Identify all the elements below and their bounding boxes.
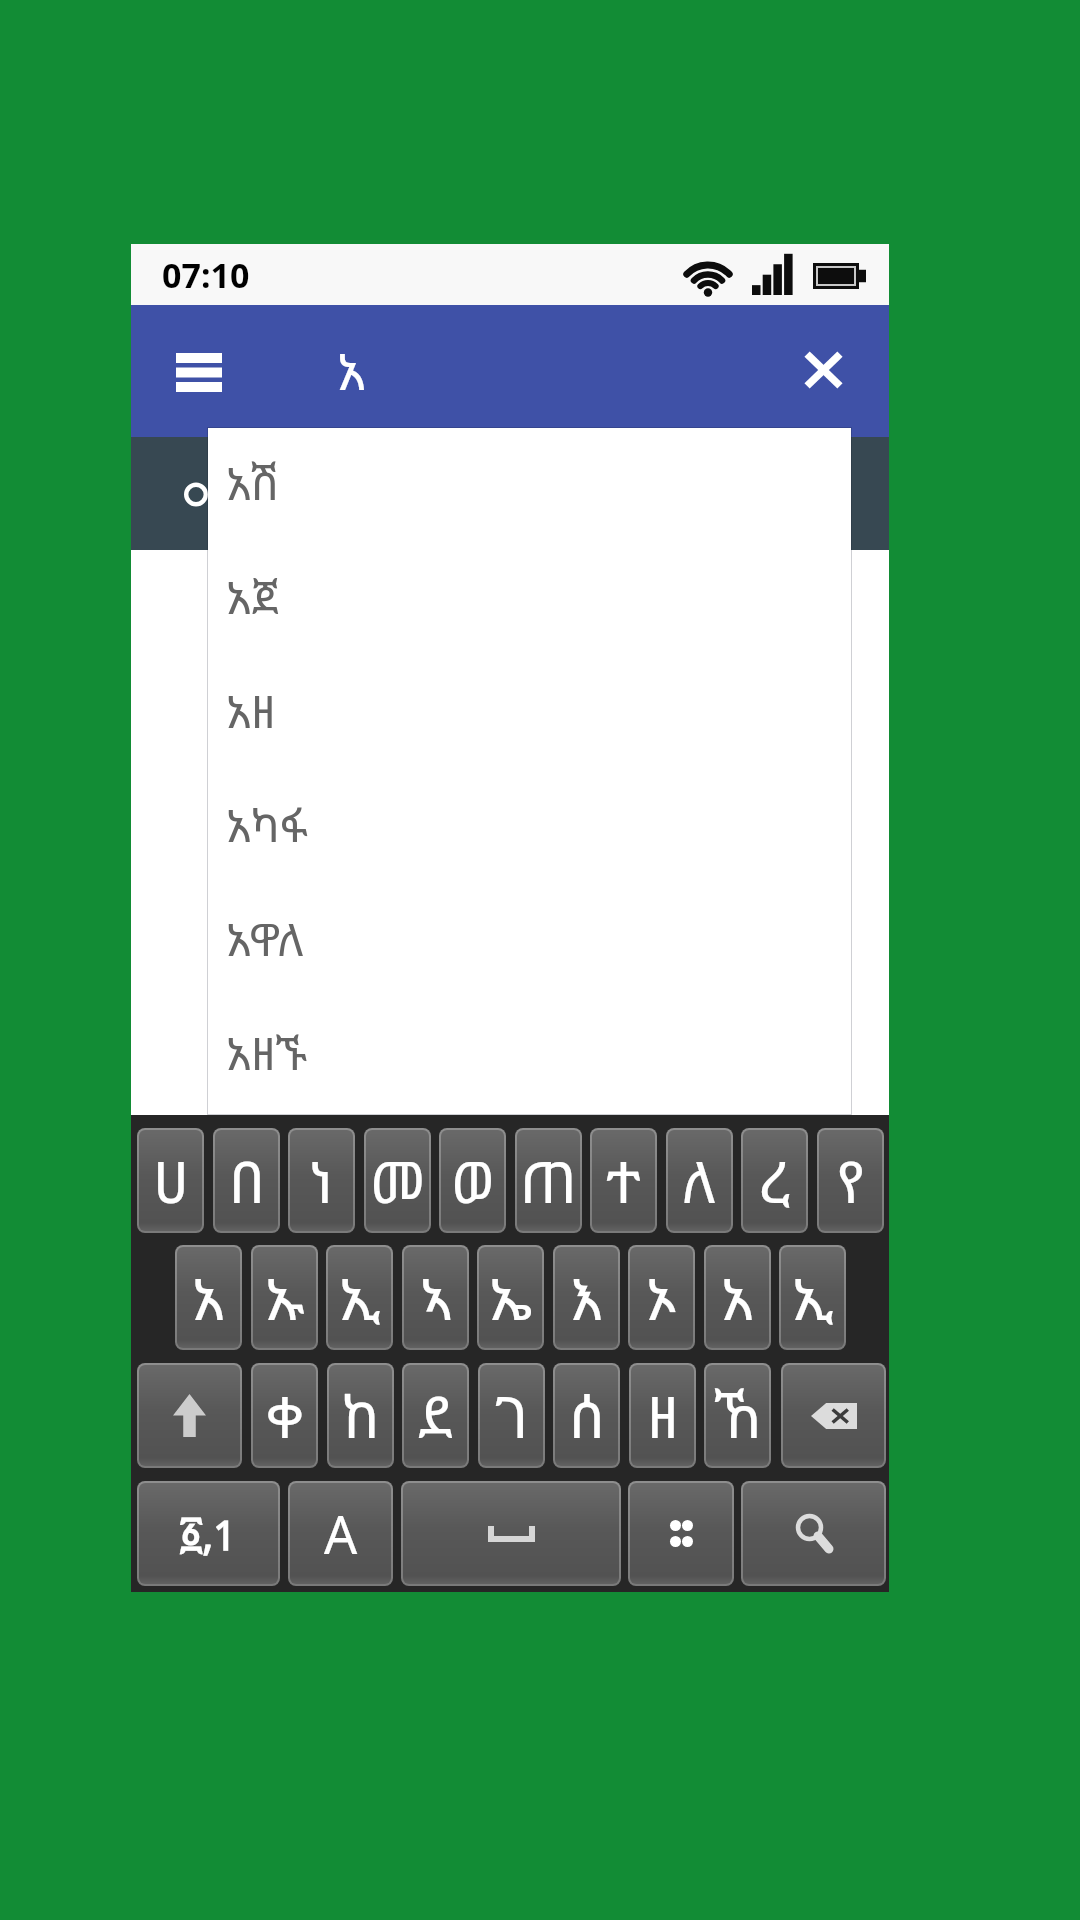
staticText: ጠ <box>520 1141 577 1220</box>
button[interactable]: Open navigation menu <box>156 332 242 412</box>
staticText: የ <box>837 1141 865 1220</box>
staticText: A <box>324 1498 358 1569</box>
button[interactable]: Search <box>743 1483 884 1584</box>
button[interactable]: ኢ <box>328 1247 391 1348</box>
button[interactable]: ኸ <box>706 1365 769 1466</box>
button[interactable]: አሽ <box>208 428 851 542</box>
staticText: ፩,1 <box>180 1507 237 1561</box>
staticText: ሀ <box>153 1141 189 1220</box>
staticText: ወ <box>451 1141 495 1220</box>
staticText: እ <box>570 1258 603 1337</box>
staticText: ተ <box>606 1141 641 1220</box>
button[interactable]: Shift <box>139 1365 240 1466</box>
button[interactable]: የ <box>819 1130 882 1231</box>
button[interactable]: ለ <box>668 1130 731 1231</box>
button[interactable]: ደ <box>404 1365 467 1466</box>
button[interactable]: ኤ <box>479 1247 542 1348</box>
staticText: ኣ <box>420 1258 452 1337</box>
button[interactable]: Close <box>782 330 864 410</box>
staticText: ዘ <box>647 1376 679 1455</box>
button[interactable]: አዘ <box>208 656 851 770</box>
button[interactable]: ገ <box>480 1365 543 1466</box>
button[interactable]: ኣ <box>404 1247 467 1348</box>
staticText: መ <box>370 1141 426 1220</box>
button[interactable]: ከ <box>329 1365 392 1466</box>
button[interactable]: አ <box>706 1247 769 1348</box>
button[interactable]: አጀ <box>208 542 851 656</box>
staticText: አ <box>721 1258 754 1337</box>
staticText: ሰ <box>569 1376 605 1455</box>
staticText: ኢ <box>792 1258 834 1337</box>
staticText: ደ <box>418 1376 453 1455</box>
button[interactable]: እ <box>555 1247 618 1348</box>
button[interactable]: A <box>290 1483 391 1584</box>
staticText: አዋለ <box>226 908 304 969</box>
staticText: ኢ <box>339 1258 381 1337</box>
button[interactable]: ቀ <box>253 1365 316 1466</box>
button[interactable]: ወ <box>441 1130 504 1231</box>
staticText: 07:10 <box>162 252 250 298</box>
button[interactable]: አዘኙ <box>208 998 851 1112</box>
button[interactable]: አካፋ <box>208 770 851 884</box>
staticText: ረ <box>759 1141 791 1220</box>
button[interactable]: Keyboard options <box>630 1483 732 1584</box>
button[interactable]: ረ <box>743 1130 806 1231</box>
button[interactable]: ፩,1 <box>139 1483 278 1584</box>
staticText: ኸ <box>714 1376 762 1455</box>
button[interactable]: ኢ <box>781 1247 844 1348</box>
button[interactable]: ኦ <box>630 1247 693 1348</box>
button[interactable]: ሰ <box>555 1365 618 1466</box>
button[interactable]: ጠ <box>517 1130 580 1231</box>
button[interactable]: Space <box>403 1483 619 1584</box>
button[interactable]: በ <box>215 1130 278 1231</box>
staticText: አካፋ <box>226 794 308 855</box>
staticText: በ <box>229 1141 265 1220</box>
staticText: ለ <box>682 1141 717 1220</box>
staticText: ኤ <box>489 1258 533 1337</box>
button[interactable]: አዋለ <box>208 884 851 998</box>
staticText: ኦ <box>646 1258 677 1337</box>
button[interactable]: Backspace <box>783 1365 884 1466</box>
button[interactable]: ነ <box>290 1130 353 1231</box>
staticText: አ <box>192 1258 225 1337</box>
staticText: አሽ <box>226 452 280 513</box>
button[interactable]: ኡ <box>253 1247 316 1348</box>
staticText: ከ <box>342 1376 380 1455</box>
staticText: አዘ <box>226 680 276 741</box>
button[interactable]: መ <box>366 1130 429 1231</box>
button[interactable]: ተ <box>592 1130 655 1231</box>
button[interactable]: ዘ <box>631 1365 694 1466</box>
staticText: ኡ <box>265 1258 305 1337</box>
button[interactable]: አ <box>177 1247 240 1348</box>
button[interactable]: ሀ <box>139 1130 202 1231</box>
staticText: አጀ <box>226 566 279 627</box>
staticText: ነ <box>309 1141 334 1220</box>
staticText: አዘኙ <box>226 1022 308 1083</box>
staticText: ገ <box>495 1376 529 1455</box>
staticText: ቀ <box>266 1376 304 1455</box>
staticText: አ <box>337 335 366 404</box>
